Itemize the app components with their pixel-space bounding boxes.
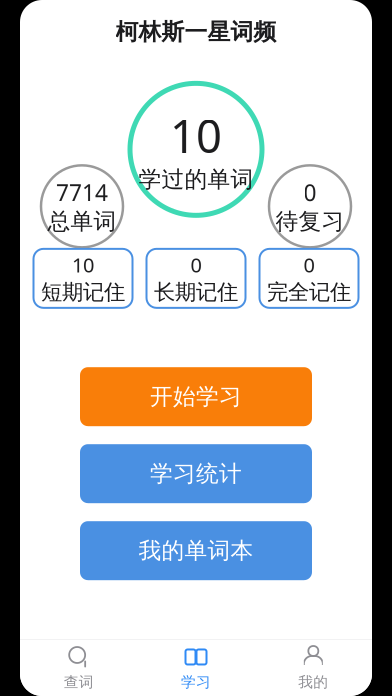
staticText: 0	[303, 177, 316, 207]
staticText: 0	[303, 251, 314, 278]
staticText: 短期记住	[41, 279, 125, 305]
button[interactable]: 0	[259, 249, 358, 308]
staticText: 查词	[64, 673, 94, 691]
staticText: 学习	[181, 673, 211, 691]
button[interactable]: 开始学习	[80, 367, 312, 426]
staticText: 学过的单词	[138, 165, 253, 193]
staticText: 10	[170, 105, 222, 165]
staticText: 总单词	[47, 207, 116, 235]
staticText: 完全记住	[267, 279, 351, 305]
staticText: 待复习	[275, 207, 344, 235]
staticText: 我的单词本	[138, 537, 253, 565]
button[interactable]: 学习统计	[80, 444, 312, 503]
staticText: 学习统计	[150, 460, 242, 488]
staticText: 我的	[298, 673, 328, 691]
staticText: 开始学习	[150, 383, 242, 411]
button[interactable]: 0	[146, 249, 245, 308]
button[interactable]: 查词	[20, 640, 137, 696]
staticText: 7714	[56, 177, 108, 207]
button[interactable]: 10	[33, 249, 132, 308]
staticText: 长期记住	[154, 279, 238, 305]
staticText: 0	[190, 251, 201, 278]
staticText: 10	[72, 251, 94, 278]
staticText: 柯林斯一星词频	[115, 18, 276, 46]
button[interactable]: 我的单词本	[80, 521, 312, 580]
button[interactable]: 我的	[255, 640, 372, 696]
button[interactable]: 学习	[137, 640, 255, 696]
